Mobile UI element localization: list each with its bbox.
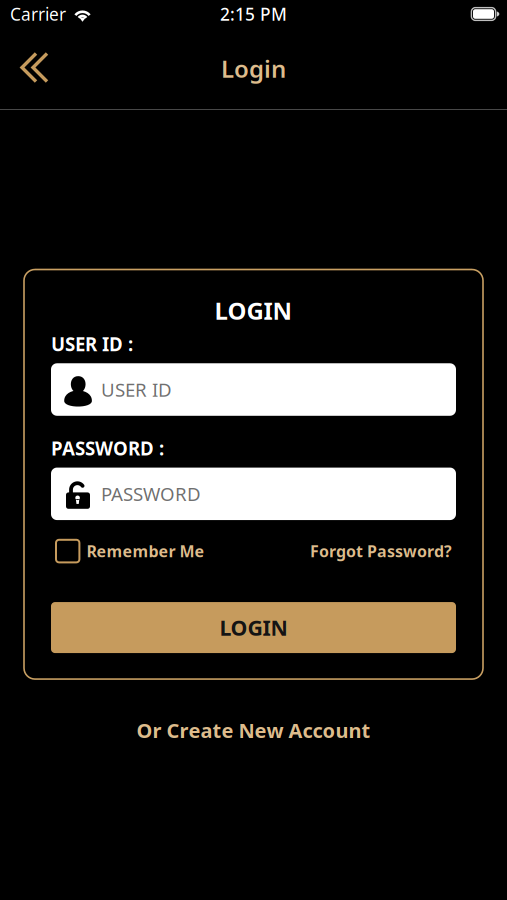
staticText: Or Create New Account: [136, 717, 370, 744]
staticText: PASSWORD: [101, 481, 201, 506]
staticText: Login: [221, 53, 286, 84]
staticText: Remember Me: [86, 540, 204, 562]
staticText: Forgot Password?: [310, 540, 452, 562]
button[interactable]: Forgot Password?: [310, 540, 456, 562]
button[interactable]: Back: [0, 38, 64, 98]
staticText: PASSWORD :: [51, 436, 164, 461]
staticText: USER ID: [101, 377, 172, 402]
staticText: Carrier: [10, 2, 66, 25]
staticText: LOGIN: [219, 613, 287, 642]
staticText: 2:15 PM: [220, 2, 287, 25]
staticText: LOGIN: [214, 295, 292, 326]
button[interactable]: Or Create New Account: [136, 717, 370, 744]
button[interactable]: Remember Me: [51, 540, 204, 562]
button[interactable]: LOGIN: [51, 602, 456, 653]
staticText: USER ID :: [51, 331, 133, 356]
